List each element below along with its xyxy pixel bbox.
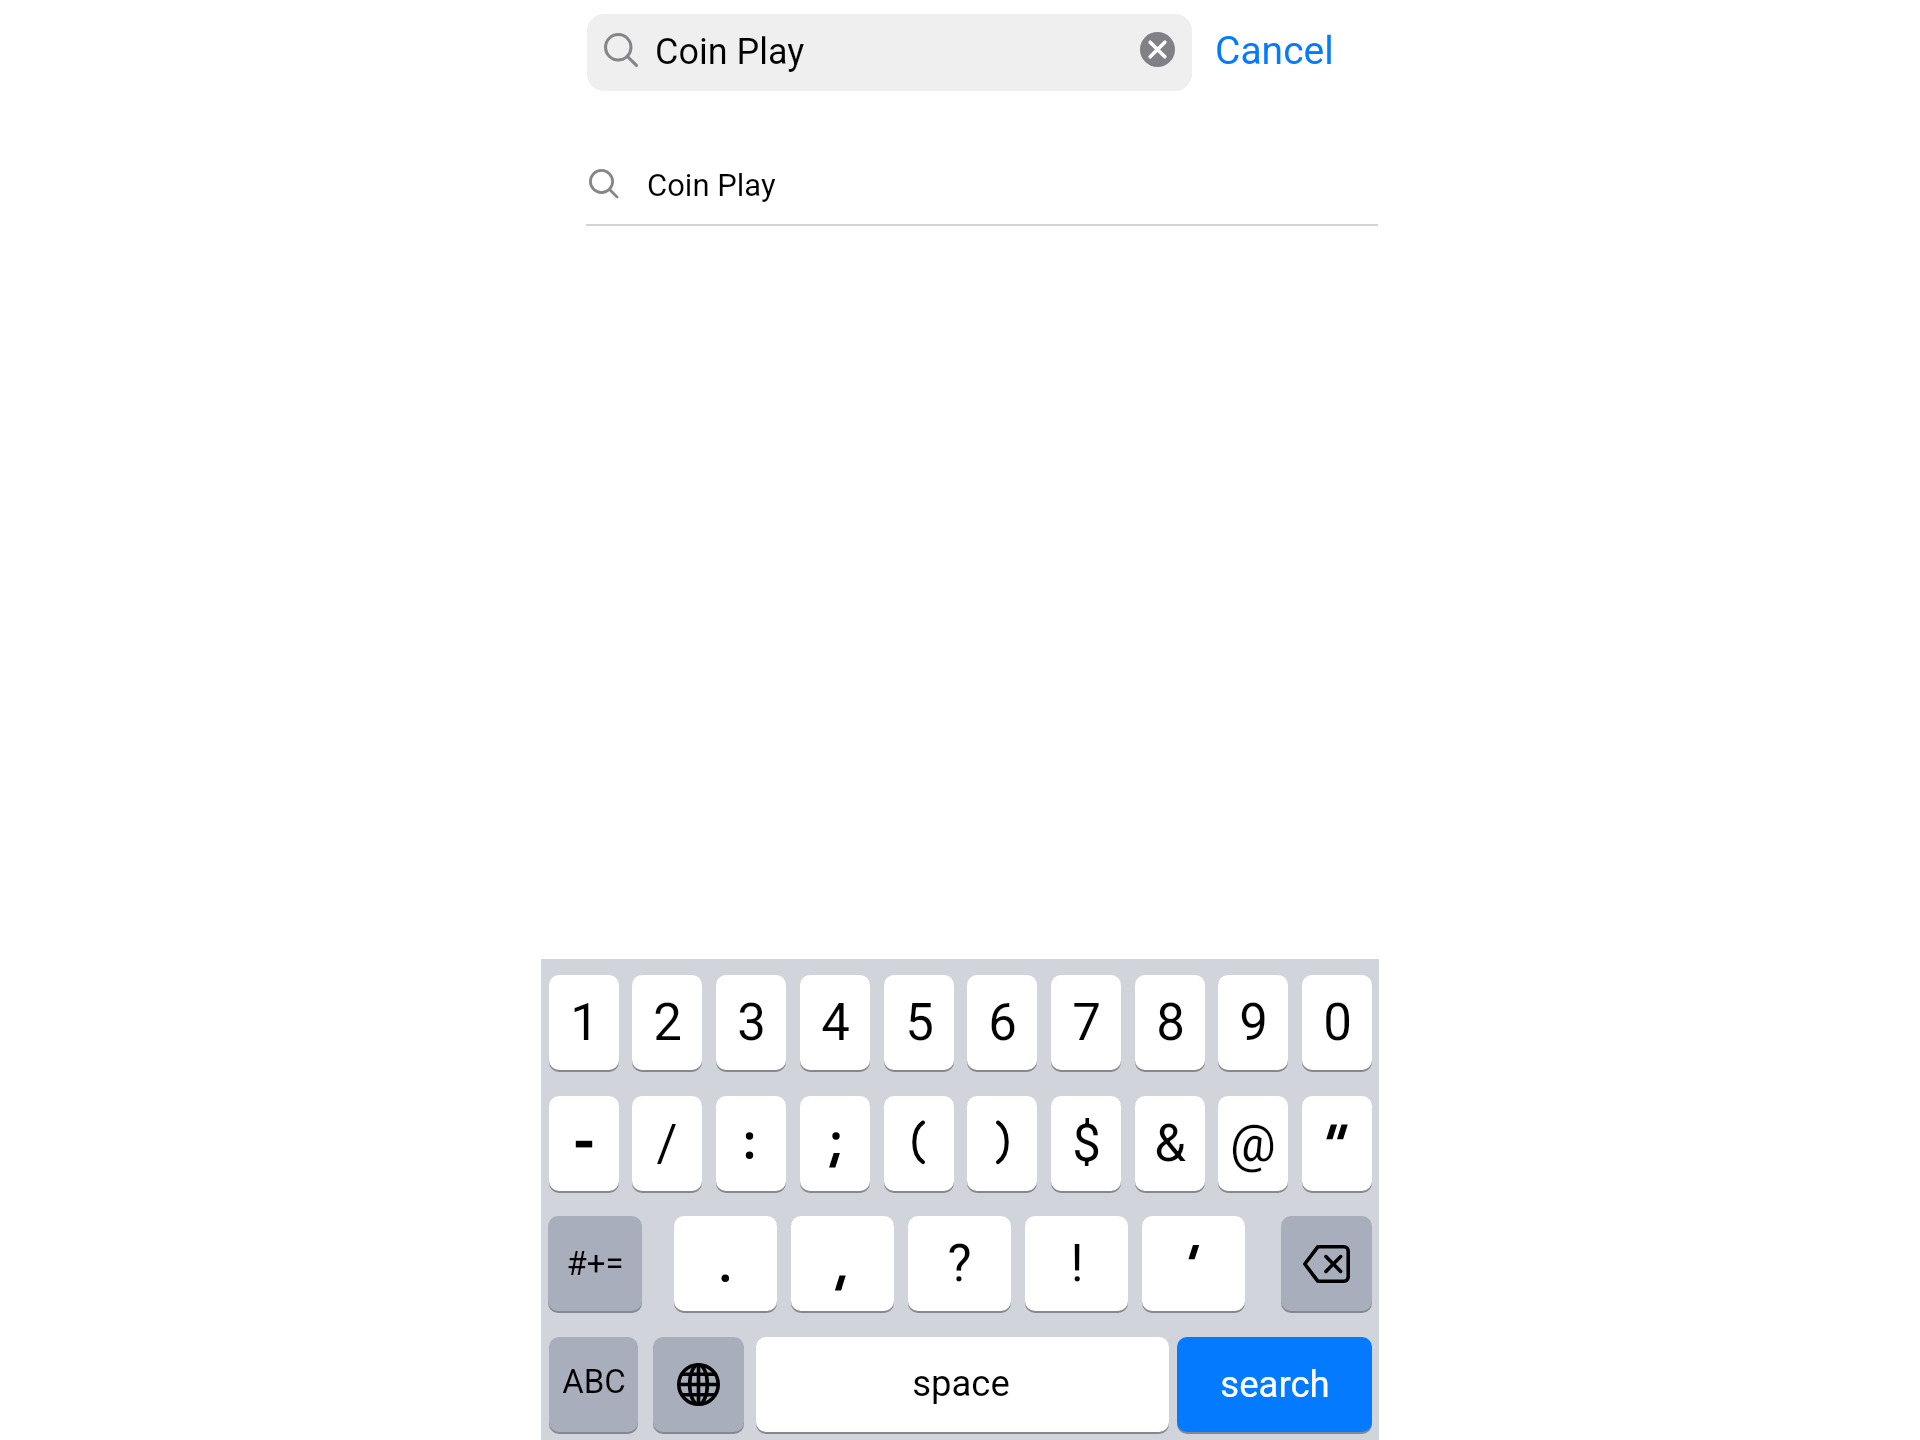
staticText: #+= (566, 1244, 624, 1283)
button[interactable]: Colon (716, 1096, 786, 1191)
button[interactable]: Semicolon (800, 1096, 870, 1191)
button[interactable]: Apostrophe (1142, 1216, 1245, 1311)
button[interactable]: Open parenthesis (884, 1096, 954, 1191)
staticText: 5 (905, 993, 934, 1053)
staticText: 1 (570, 993, 599, 1053)
staticText: Cancel (1215, 28, 1334, 74)
button[interactable]: 5 (884, 975, 954, 1070)
staticText: 2 (653, 993, 682, 1053)
staticText: ABC (562, 1362, 626, 1401)
button[interactable]: / (632, 1096, 702, 1191)
button[interactable]: 2 (632, 975, 702, 1070)
button[interactable]: Coin Play (585, 150, 1378, 220)
staticText: 3 (737, 993, 766, 1053)
button[interactable]: Coin Play (587, 14, 1192, 91)
button[interactable]: 8 (1135, 975, 1205, 1070)
button[interactable]: search (1177, 1337, 1372, 1432)
button[interactable]: $ (1051, 1096, 1121, 1191)
staticText: ? (947, 1234, 972, 1294)
button[interactable]: Double quote (1302, 1096, 1372, 1191)
button[interactable]: ? (908, 1216, 1011, 1311)
staticText: 4 (821, 993, 850, 1053)
button[interactable]: 4 (800, 975, 870, 1070)
button[interactable]: @ (1218, 1096, 1288, 1191)
staticText: Coin Play (655, 31, 805, 73)
button[interactable]: 0 (1302, 975, 1372, 1070)
staticText: Coin Play (647, 167, 776, 203)
staticText: 8 (1156, 993, 1185, 1053)
button[interactable]: Backspace (1281, 1216, 1372, 1311)
staticText: @ (1230, 1114, 1276, 1174)
staticText: 0 (1323, 993, 1352, 1053)
button[interactable]: Clear search (1140, 32, 1175, 67)
button[interactable]: space (756, 1337, 1169, 1432)
staticText: search (1220, 1363, 1330, 1406)
button[interactable]: #+= (548, 1216, 642, 1311)
button[interactable]: ! (1025, 1216, 1128, 1311)
button[interactable]: 6 (967, 975, 1037, 1070)
staticText: ! (1070, 1234, 1084, 1294)
button[interactable]: ABC (549, 1337, 638, 1432)
button[interactable]: 7 (1051, 975, 1121, 1070)
staticText: 7 (1072, 993, 1101, 1053)
button[interactable]: Close parenthesis (967, 1096, 1037, 1191)
staticText: space (912, 1362, 1010, 1405)
button[interactable]: 9 (1218, 975, 1288, 1070)
staticText: $ (1072, 1114, 1101, 1174)
button[interactable]: Switch keyboard (653, 1337, 744, 1432)
staticText: 9 (1239, 993, 1268, 1053)
button[interactable]: 1 (549, 975, 619, 1070)
button[interactable]: Cancel (1213, 16, 1335, 86)
button[interactable]: & (1135, 1096, 1205, 1191)
button[interactable]: Comma (791, 1216, 894, 1311)
staticText: 6 (988, 993, 1017, 1053)
button[interactable]: Period (674, 1216, 777, 1311)
button[interactable]: Hyphen (549, 1096, 619, 1191)
staticText: & (1154, 1114, 1186, 1174)
button[interactable]: 3 (716, 975, 786, 1070)
staticText: / (656, 1114, 678, 1174)
